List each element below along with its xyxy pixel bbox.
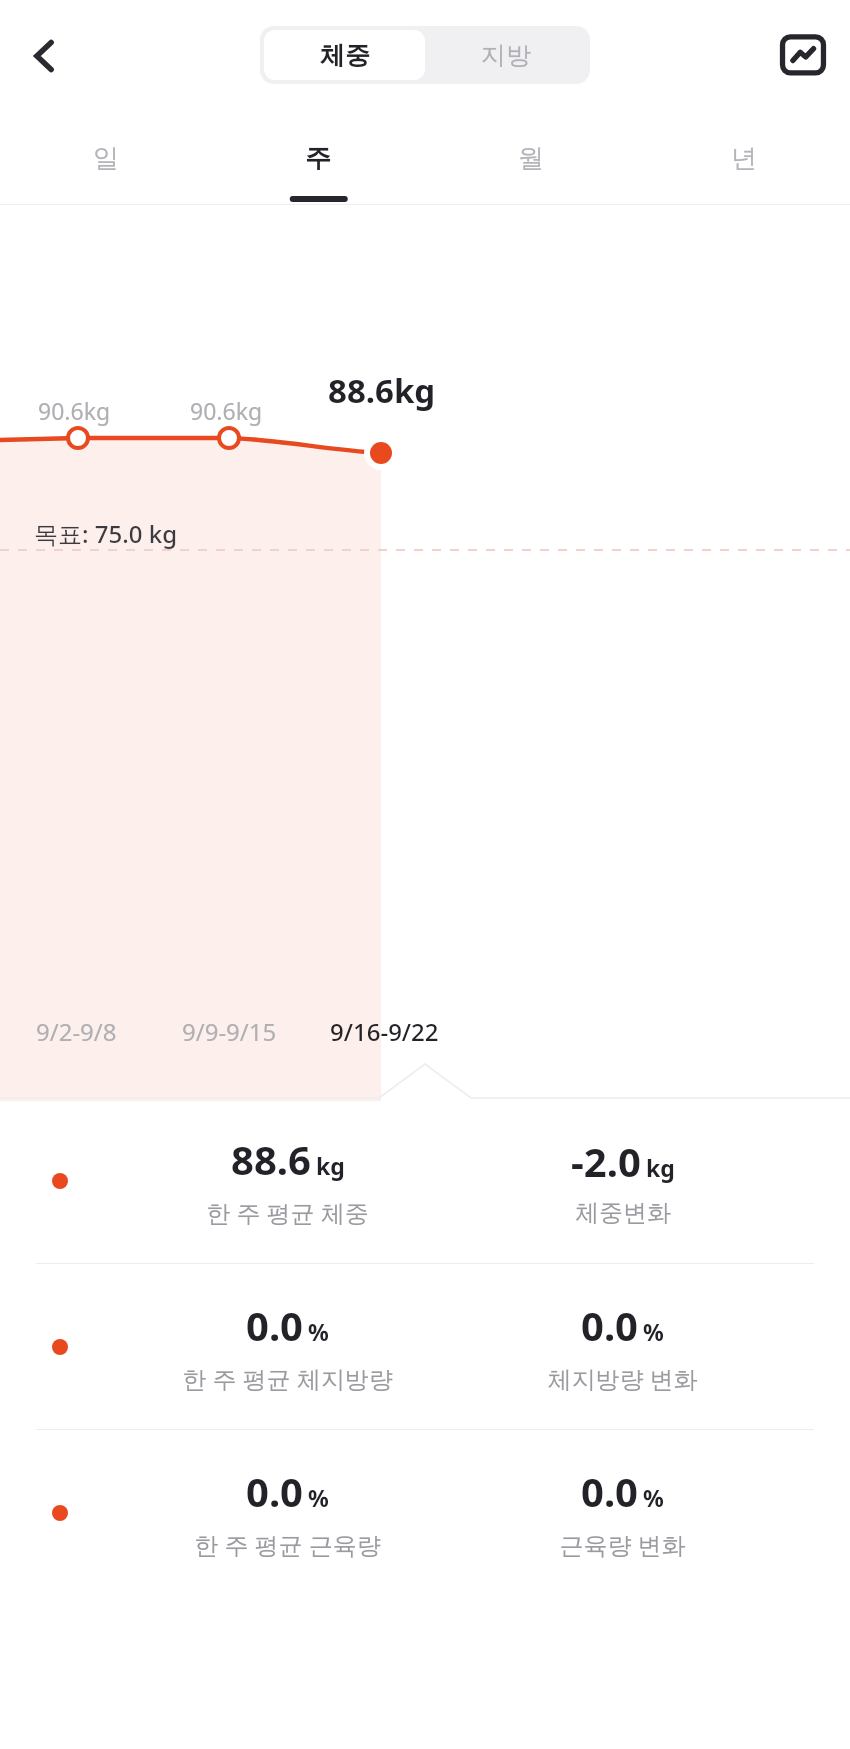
staticText: 0.0: [246, 1464, 303, 1518]
staticText: 주: [305, 142, 331, 175]
staticText: 90.6kg: [38, 395, 111, 426]
button[interactable]: Back: [14, 25, 76, 87]
staticText: %: [308, 1482, 329, 1513]
button[interactable]: 주: [212, 112, 424, 204]
staticText: 0.0: [581, 1298, 638, 1352]
staticText: %: [643, 1482, 664, 1513]
staticText: 한 주 평균 체중: [206, 1196, 369, 1229]
staticText: 지방: [481, 40, 531, 71]
staticText: 88.6: [231, 1132, 311, 1186]
staticText: 0.0: [246, 1298, 303, 1352]
staticText: kg: [646, 1152, 675, 1183]
staticText: 일: [93, 142, 119, 175]
staticText: 목표: 75.0 kg: [34, 517, 178, 550]
button[interactable]: 체중: [264, 30, 425, 80]
staticText: 9/16-9/22: [330, 1015, 439, 1048]
staticText: 0.0: [581, 1464, 638, 1518]
button[interactable]: 월: [424, 112, 637, 204]
staticText: 90.6kg: [190, 395, 263, 426]
button[interactable]: Chart: [772, 25, 834, 87]
staticText: 체중변화: [575, 1198, 671, 1228]
staticText: 체중: [320, 40, 370, 71]
button[interactable]: 지방: [425, 30, 586, 80]
button[interactable]: 0.0: [0, 1264, 850, 1429]
staticText: 88.6kg: [328, 368, 436, 413]
staticText: 근육량 변화: [559, 1528, 686, 1561]
staticText: kg: [316, 1150, 345, 1181]
staticText: 9/9-9/15: [182, 1015, 277, 1048]
staticText: 한 주 평균 체지방량: [182, 1362, 393, 1395]
staticText: %: [643, 1316, 664, 1347]
button[interactable]: 0.0: [0, 1430, 850, 1595]
button[interactable]: 년: [637, 112, 850, 204]
staticText: %: [308, 1316, 329, 1347]
staticText: 년: [731, 142, 757, 175]
button[interactable]: 88.6kg: [283, 360, 480, 420]
button[interactable]: 일: [0, 112, 212, 204]
staticText: 9/2-9/8: [36, 1015, 117, 1048]
staticText: -2.0: [571, 1134, 641, 1188]
staticText: 체지방량 변화: [547, 1362, 698, 1395]
button[interactable]: 88.6: [0, 1098, 850, 1263]
staticText: 한 주 평균 근육량: [194, 1528, 381, 1561]
staticText: 월: [518, 142, 544, 175]
